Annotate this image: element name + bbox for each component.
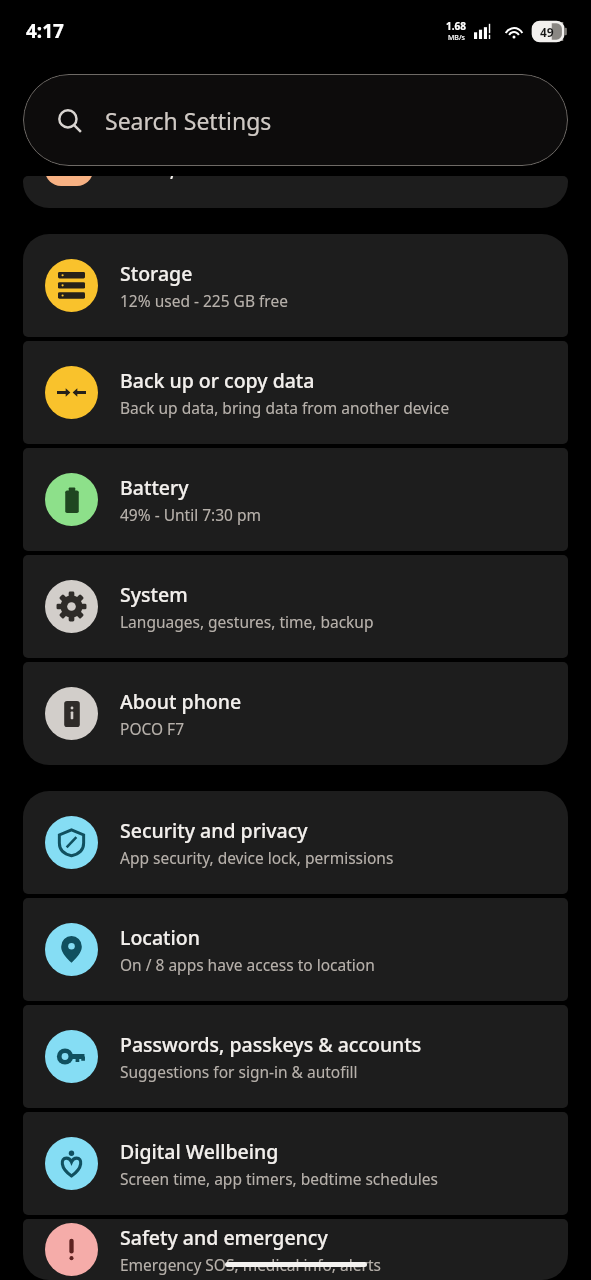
button[interactable]: System [23, 555, 568, 658]
staticText: On / 8 apps have access to location [120, 954, 375, 975]
staticText: About phone [120, 688, 242, 715]
staticText: Location [120, 924, 200, 951]
staticText: Back up data, bring data from another de… [120, 397, 450, 418]
staticText: Languages, gestures, time, backup [120, 611, 374, 632]
staticText: Storage [120, 260, 193, 287]
staticText: 49 [540, 24, 554, 40]
staticText: System [120, 581, 188, 608]
staticText: 4:17 [26, 18, 64, 44]
button[interactable]: Digital Wellbeing [23, 1112, 568, 1215]
staticText: Digital Wellbeing [120, 1138, 279, 1165]
staticText: POCO F7 [120, 718, 185, 739]
staticText: 49% - Until 7:30 pm [120, 504, 262, 525]
staticText: MB/s [448, 33, 465, 43]
button[interactable]: Location [23, 898, 568, 1001]
button[interactable]: Back up or copy data [23, 341, 568, 444]
staticText: Emergency SOS, medical info, alerts [120, 1254, 381, 1275]
button[interactable]: Passwords, passkeys & accounts [23, 1005, 568, 1108]
staticText: Search Settings [105, 105, 272, 136]
staticText: Home, lock screen [115, 176, 282, 182]
staticText: Security and privacy [120, 817, 308, 844]
staticText: Battery [120, 474, 189, 501]
staticText: Screen time, app timers, bedtime schedul… [120, 1168, 438, 1189]
staticText: 12% used - 225 GB free [120, 290, 288, 311]
button[interactable]: Safety and emergency [23, 1219, 568, 1280]
button[interactable]: About phone [23, 662, 568, 765]
staticText: Suggestions for sign-in & autofill [120, 1061, 358, 1082]
button[interactable]: Battery [23, 448, 568, 551]
staticText: Back up or copy data [120, 367, 315, 394]
staticText: 1.68 [446, 19, 466, 33]
button[interactable]: Home, lock screen [23, 176, 568, 208]
button[interactable]: Storage [23, 234, 568, 337]
button[interactable]: Search Settings [23, 74, 568, 166]
staticText: Safety and emergency [120, 1224, 328, 1251]
button[interactable]: Security and privacy [23, 791, 568, 894]
staticText: App security, device lock, permissions [120, 847, 394, 868]
staticText: Passwords, passkeys & accounts [120, 1031, 422, 1058]
